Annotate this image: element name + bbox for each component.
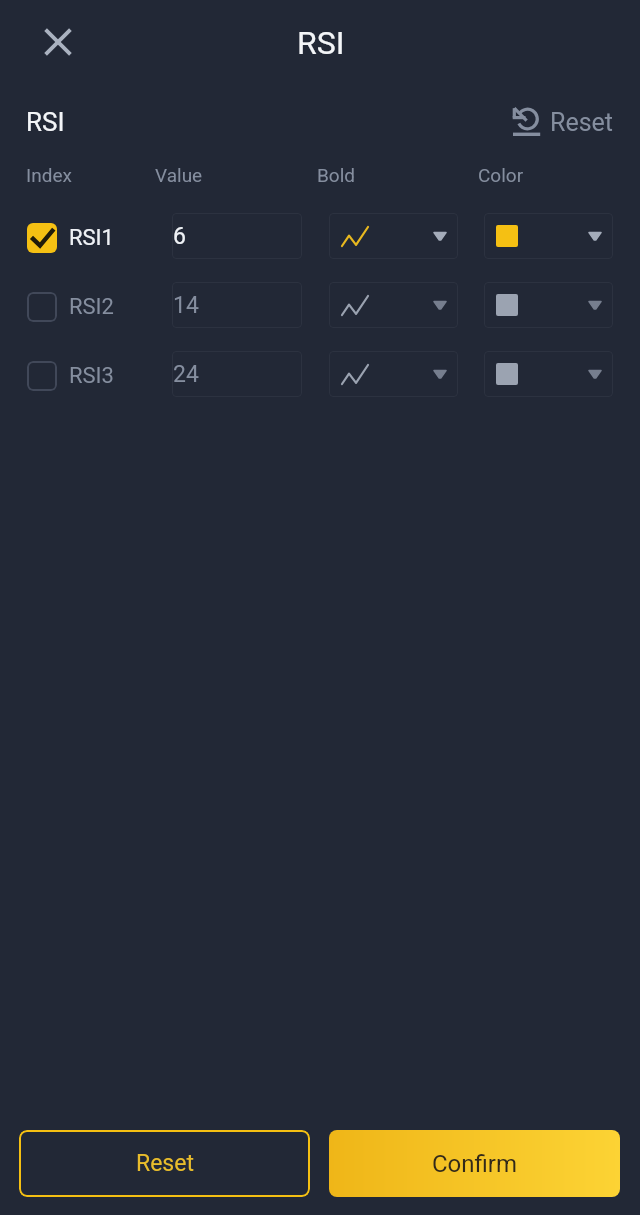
staticText: Confirm <box>432 1150 518 1178</box>
staticText: 14 <box>173 292 199 319</box>
button[interactable]: Confirm <box>329 1130 620 1197</box>
staticText: RSI2 <box>69 294 114 320</box>
staticText: RSI3 <box>69 363 114 389</box>
button[interactable]: Colour <box>484 213 613 259</box>
button[interactable]: Reset <box>19 1130 310 1197</box>
staticText: Bold <box>317 164 356 186</box>
button[interactable]: 24 <box>172 351 302 397</box>
staticText: Reset <box>136 1150 194 1177</box>
button[interactable]: RSI2 <box>20 284 165 330</box>
button[interactable]: Close <box>36 20 80 64</box>
staticText: 24 <box>173 361 199 388</box>
staticText: RSI <box>26 107 65 137</box>
staticText: 6 <box>173 223 186 250</box>
staticText: Value <box>155 164 203 186</box>
staticText: Color <box>478 164 524 186</box>
staticText: RSI1 <box>69 225 114 251</box>
button[interactable]: RSI1 <box>20 215 165 261</box>
button[interactable]: 14 <box>172 282 302 328</box>
staticText: Index <box>26 164 72 186</box>
button[interactable]: Colour <box>484 351 613 397</box>
button[interactable]: Line style <box>329 351 458 397</box>
staticText: RSI <box>297 24 345 62</box>
button[interactable]: Reset <box>507 103 614 141</box>
staticText: Reset <box>550 108 614 137</box>
button[interactable]: Line style <box>329 213 458 259</box>
button[interactable]: 6 <box>172 213 302 259</box>
button[interactable]: Line style <box>329 282 458 328</box>
button[interactable]: RSI3 <box>20 353 165 399</box>
button[interactable]: Colour <box>484 282 613 328</box>
